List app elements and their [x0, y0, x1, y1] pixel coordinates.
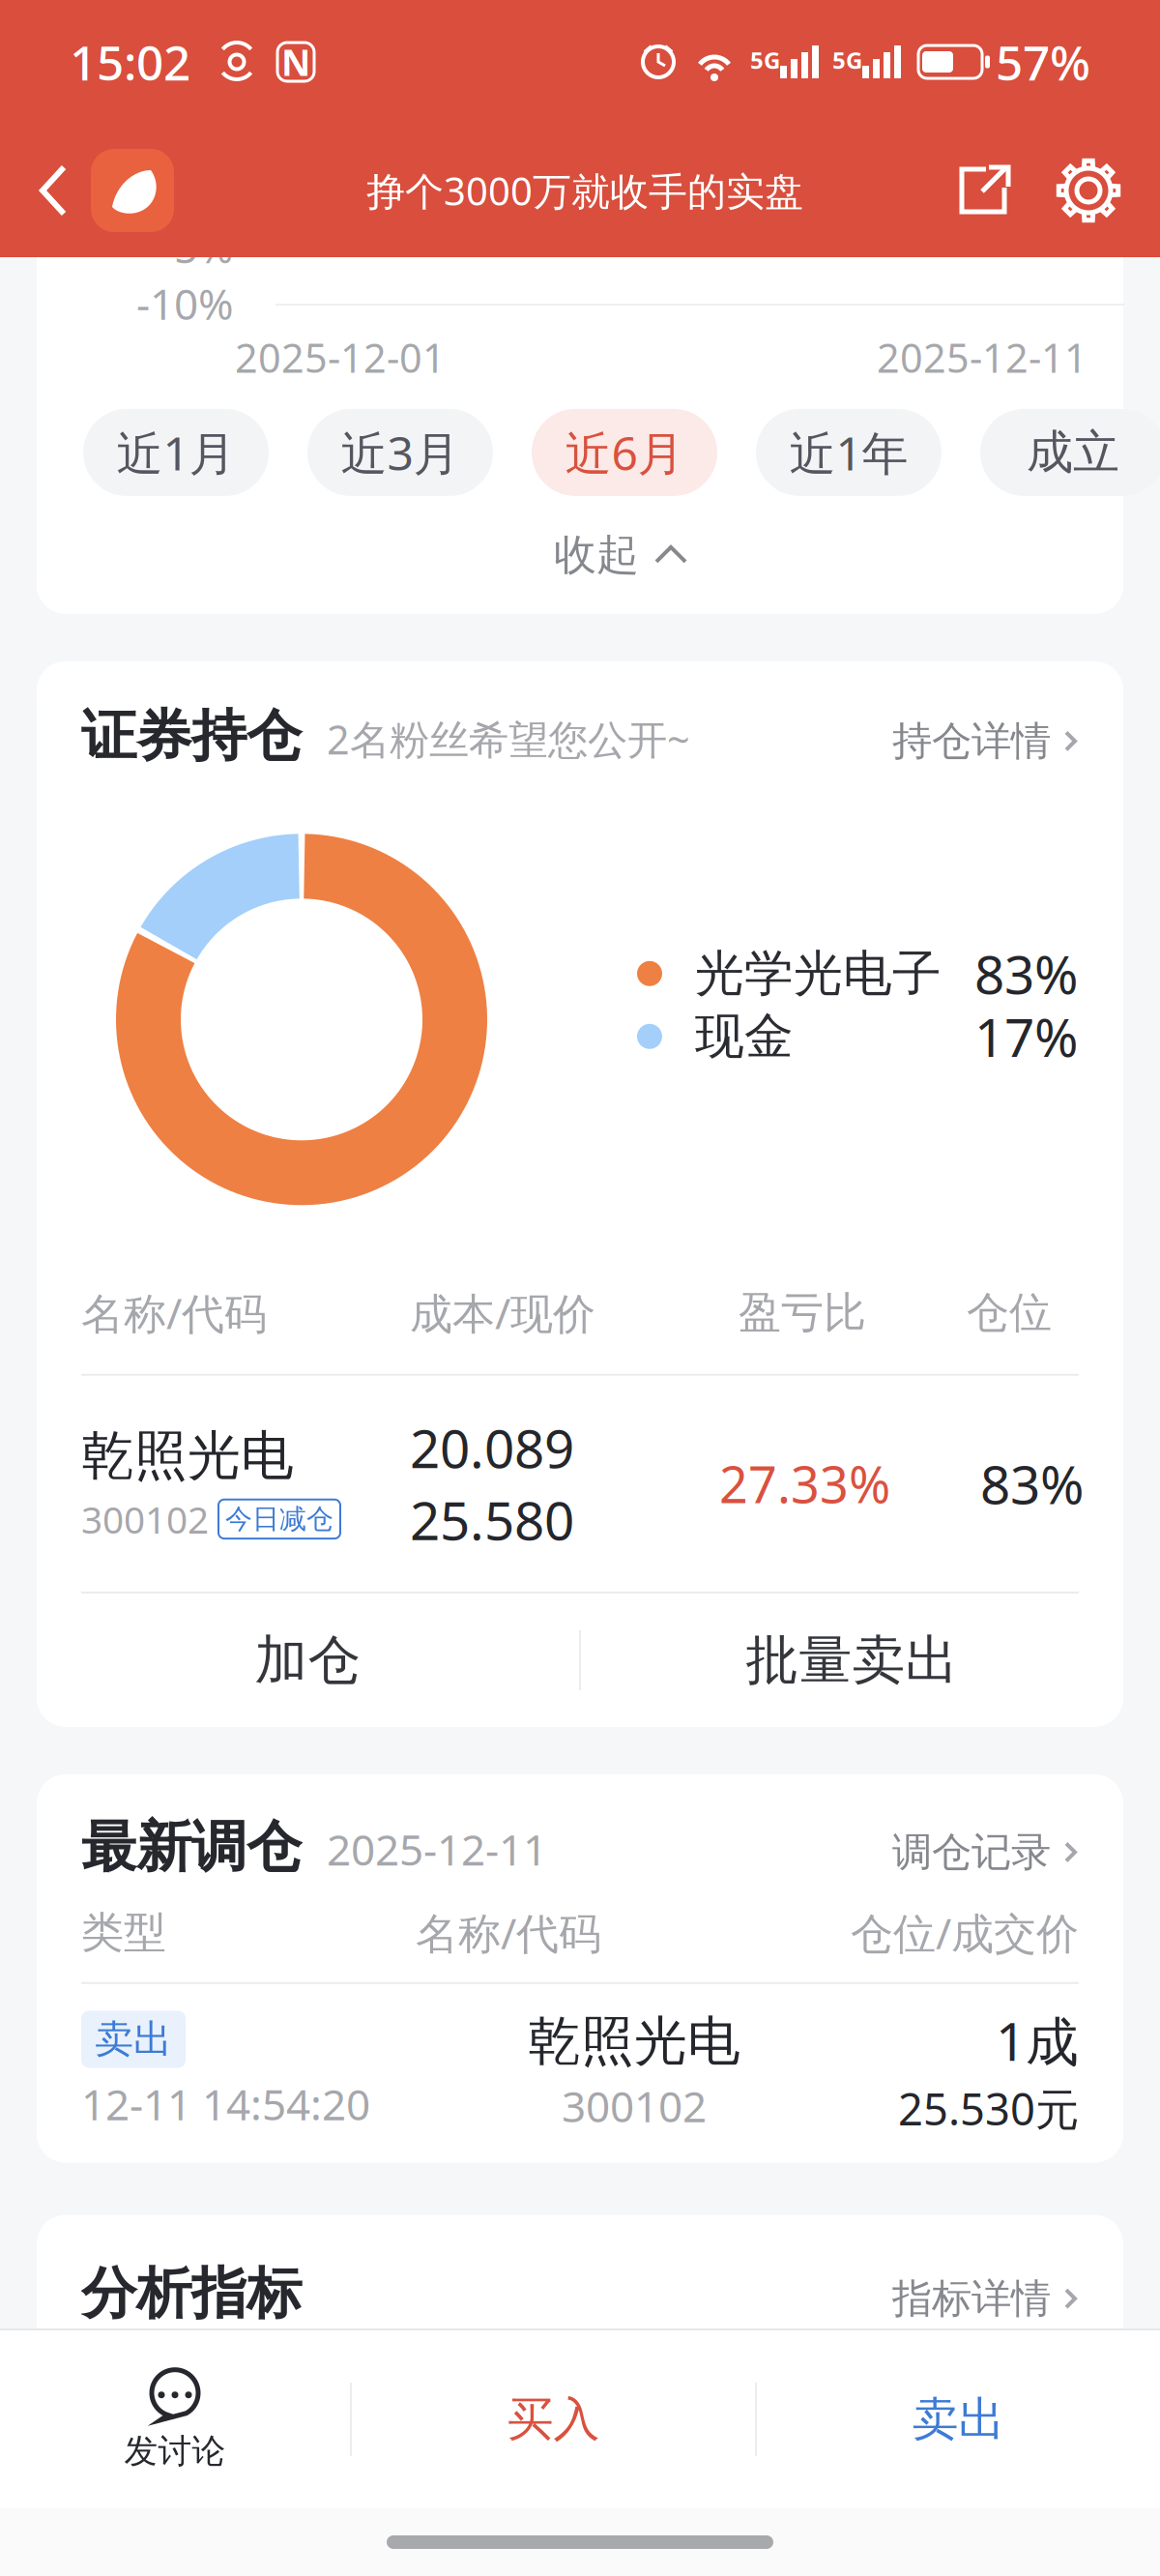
staticText: 成立: [1027, 424, 1119, 481]
staticText: 类型: [81, 1906, 166, 1959]
staticText: 卖出: [95, 2016, 172, 2063]
staticText: 25.530元: [898, 2079, 1079, 2138]
staticText: 光学光电子: [695, 943, 942, 1004]
button[interactable]: 加仓: [37, 1593, 579, 1727]
staticText: 仓位/成交价: [851, 1904, 1079, 1961]
button[interactable]: 近3月: [307, 409, 493, 496]
staticText: 5G: [750, 44, 780, 75]
button[interactable]: Share: [930, 124, 1038, 257]
staticText: 乾照光电: [81, 1423, 294, 1488]
staticText: 买入: [507, 2391, 600, 2448]
staticText: 2025-12-01: [235, 331, 446, 384]
button[interactable]: 持仓详情: [892, 717, 1079, 766]
button[interactable]: 近6月: [532, 409, 717, 496]
staticText: 分析指标: [81, 2259, 302, 2327]
staticText: 今日减仓: [225, 1502, 333, 1536]
staticText: 指标详情: [892, 2274, 1051, 2323]
staticText: 300102: [81, 1494, 209, 1544]
staticText: -10%: [136, 275, 234, 331]
button[interactable]: 近1月: [83, 409, 269, 496]
button[interactable]: 卖出: [757, 2330, 1160, 2508]
staticText: 15:02: [70, 30, 190, 94]
staticText: 1成: [996, 2005, 1079, 2075]
button[interactable]: Settings: [1038, 124, 1139, 257]
staticText: 2025-12-11: [877, 331, 1087, 384]
staticText: 仓位: [967, 1287, 1052, 1339]
staticText: 持仓详情: [892, 717, 1051, 766]
button[interactable]: 买入: [352, 2330, 755, 2508]
staticText: 近1年: [789, 422, 908, 483]
staticText: 乾照光电: [528, 2009, 740, 2074]
staticText: 57%: [996, 30, 1090, 94]
staticText: 加仓: [255, 1628, 361, 1693]
staticText: 17%: [974, 1001, 1078, 1071]
staticText: 最新调仓: [81, 1813, 302, 1881]
button[interactable]: 批量卖出: [581, 1593, 1123, 1727]
button[interactable]: Back: [0, 124, 91, 257]
staticText: 83%: [980, 1449, 1084, 1519]
staticText: 名称/代码: [81, 1284, 267, 1341]
staticText: 盈亏比: [739, 1287, 866, 1339]
staticText: 2名粉丝希望您公开~: [327, 712, 690, 765]
staticText: N: [281, 38, 310, 86]
button[interactable]: 调仓记录: [892, 1828, 1079, 1877]
staticText: 发讨论: [124, 2431, 226, 2472]
staticText: 2025-12-11: [327, 1821, 547, 1877]
staticText: 证券持仓: [81, 702, 302, 770]
button[interactable]: 成立: [980, 409, 1160, 496]
staticText: 批量卖出: [746, 1628, 958, 1693]
button[interactable]: 近1年: [756, 409, 942, 496]
staticText: 25.580: [410, 1485, 574, 1555]
staticText: 20.089: [410, 1412, 574, 1483]
staticText: 27.33%: [719, 1450, 890, 1517]
staticText: 近6月: [565, 422, 684, 483]
button[interactable]: 收起: [77, 496, 1160, 614]
staticText: 成本/现价: [410, 1284, 595, 1341]
staticText: 12-11 14:54:20: [81, 2076, 370, 2132]
staticText: 300102: [562, 2078, 707, 2134]
staticText: 现金: [695, 1006, 794, 1066]
staticText: 名称/代码: [416, 1904, 601, 1961]
staticText: 83%: [974, 938, 1078, 1009]
staticText: 5G: [832, 44, 862, 75]
staticText: 挣个3000万就收手的实盘: [366, 165, 803, 216]
staticText: 卖出: [912, 2391, 1005, 2448]
staticText: -5%: [160, 219, 234, 275]
staticText: 调仓记录: [892, 1828, 1051, 1877]
button[interactable]: 指标详情: [892, 2274, 1079, 2323]
staticText: 收起: [554, 529, 639, 581]
staticText: 近3月: [341, 422, 460, 483]
button[interactable]: 发讨论: [0, 2330, 350, 2508]
staticText: 近1月: [116, 422, 235, 483]
